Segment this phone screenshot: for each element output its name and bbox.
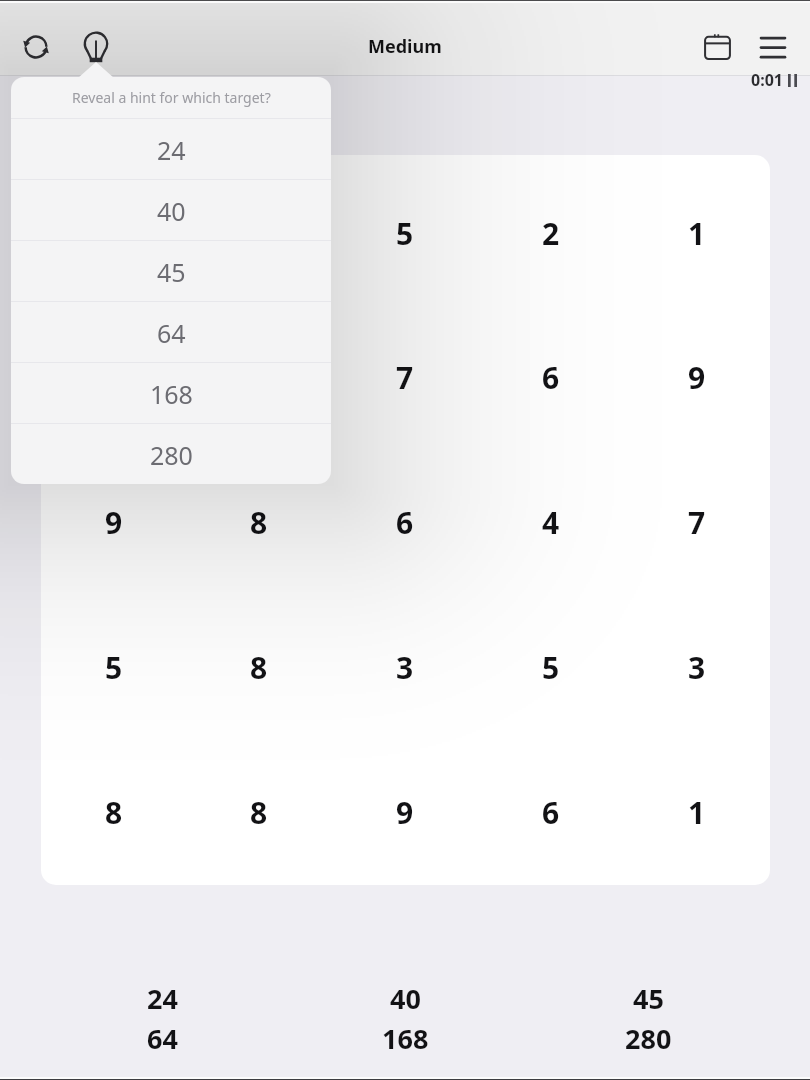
staticText: 6 — [396, 502, 414, 543]
button[interactable]: 6 — [478, 305, 624, 450]
button[interactable]: Calendar — [690, 20, 745, 74]
staticText: 8 — [105, 792, 123, 833]
staticText: 6 — [542, 357, 560, 398]
button[interactable]: 7 — [624, 450, 770, 595]
staticText: 8 — [250, 647, 268, 688]
staticText: 1 — [688, 792, 706, 833]
button[interactable]: 4 — [186, 305, 332, 450]
staticText: 7 — [396, 357, 414, 398]
button[interactable]: 1 — [624, 740, 770, 885]
button[interactable]: 2 — [478, 161, 624, 305]
button[interactable]: 168 — [284, 1018, 527, 1058]
button[interactable]: 9 — [332, 740, 478, 885]
staticText: 40 — [390, 980, 421, 1017]
button[interactable]: 5 — [478, 595, 624, 740]
button[interactable]: 8 — [41, 740, 186, 885]
button[interactable]: 9 — [624, 305, 770, 450]
staticText: 5 — [542, 647, 560, 688]
button[interactable]: 5 — [332, 161, 478, 305]
staticText: 280 — [150, 438, 193, 472]
button[interactable]: Hint — [66, 20, 126, 74]
staticText: 3 — [688, 647, 706, 688]
button[interactable]: 6 — [478, 740, 624, 885]
button[interactable]: 8 — [186, 595, 332, 740]
button[interactable]: 4 — [478, 450, 624, 595]
button[interactable]: 280 — [11, 424, 331, 484]
button[interactable]: 64 — [41, 1018, 284, 1058]
button[interactable]: 8 — [186, 450, 332, 595]
button[interactable]: 3 — [332, 595, 478, 740]
button[interactable]: 45 — [11, 241, 331, 301]
button[interactable]: 9 — [41, 450, 186, 595]
staticText: 3 — [396, 647, 414, 688]
button[interactable]: 24 — [41, 978, 284, 1018]
button[interactable]: 4 — [41, 161, 186, 305]
button[interactable]: 6 — [332, 450, 478, 595]
staticText: 9 — [688, 357, 706, 398]
staticText: 168 — [150, 377, 193, 411]
staticText: 64 — [157, 316, 186, 350]
staticText: 5 — [396, 213, 414, 254]
button[interactable]: 40 — [11, 180, 331, 240]
staticText: 24 — [147, 980, 178, 1017]
staticText: 8 — [250, 792, 268, 833]
button[interactable]: 45 — [527, 978, 770, 1018]
button[interactable]: 280 — [527, 1018, 770, 1058]
staticText: 7 — [688, 502, 706, 543]
staticText: 4 — [542, 502, 560, 543]
staticText: 40 — [157, 194, 186, 228]
staticText: 45 — [157, 255, 186, 289]
staticText: 280 — [625, 1020, 672, 1057]
button[interactable]: 24 — [11, 119, 331, 179]
button[interactable]: 1 — [624, 161, 770, 305]
staticText: Medium — [368, 34, 442, 59]
button[interactable]: 168 — [11, 363, 331, 423]
button[interactable]: 5 — [41, 595, 186, 740]
button[interactable]: 64 — [11, 302, 331, 362]
staticText: Reveal a hint for which target? — [72, 88, 271, 107]
staticText: 24 — [157, 133, 186, 167]
staticText: 64 — [147, 1020, 178, 1057]
button[interactable]: 7 — [332, 305, 478, 450]
button[interactable]: 2 — [41, 305, 186, 450]
staticText: 5 — [105, 647, 123, 688]
staticText: 6 — [542, 792, 560, 833]
button[interactable]: Menu — [745, 20, 800, 74]
staticText: 2 — [542, 213, 560, 254]
staticText: 1 — [688, 213, 706, 254]
staticText: 0:01 — [751, 69, 783, 91]
staticText: 168 — [382, 1020, 429, 1057]
button[interactable]: 8 — [186, 740, 332, 885]
staticText: 9 — [105, 502, 123, 543]
button[interactable]: 40 — [284, 978, 527, 1018]
button[interactable]: Restart — [6, 20, 66, 74]
staticText: 45 — [633, 980, 664, 1017]
staticText: 9 — [396, 792, 414, 833]
button[interactable]: 3 — [624, 595, 770, 740]
staticText: 8 — [250, 502, 268, 543]
